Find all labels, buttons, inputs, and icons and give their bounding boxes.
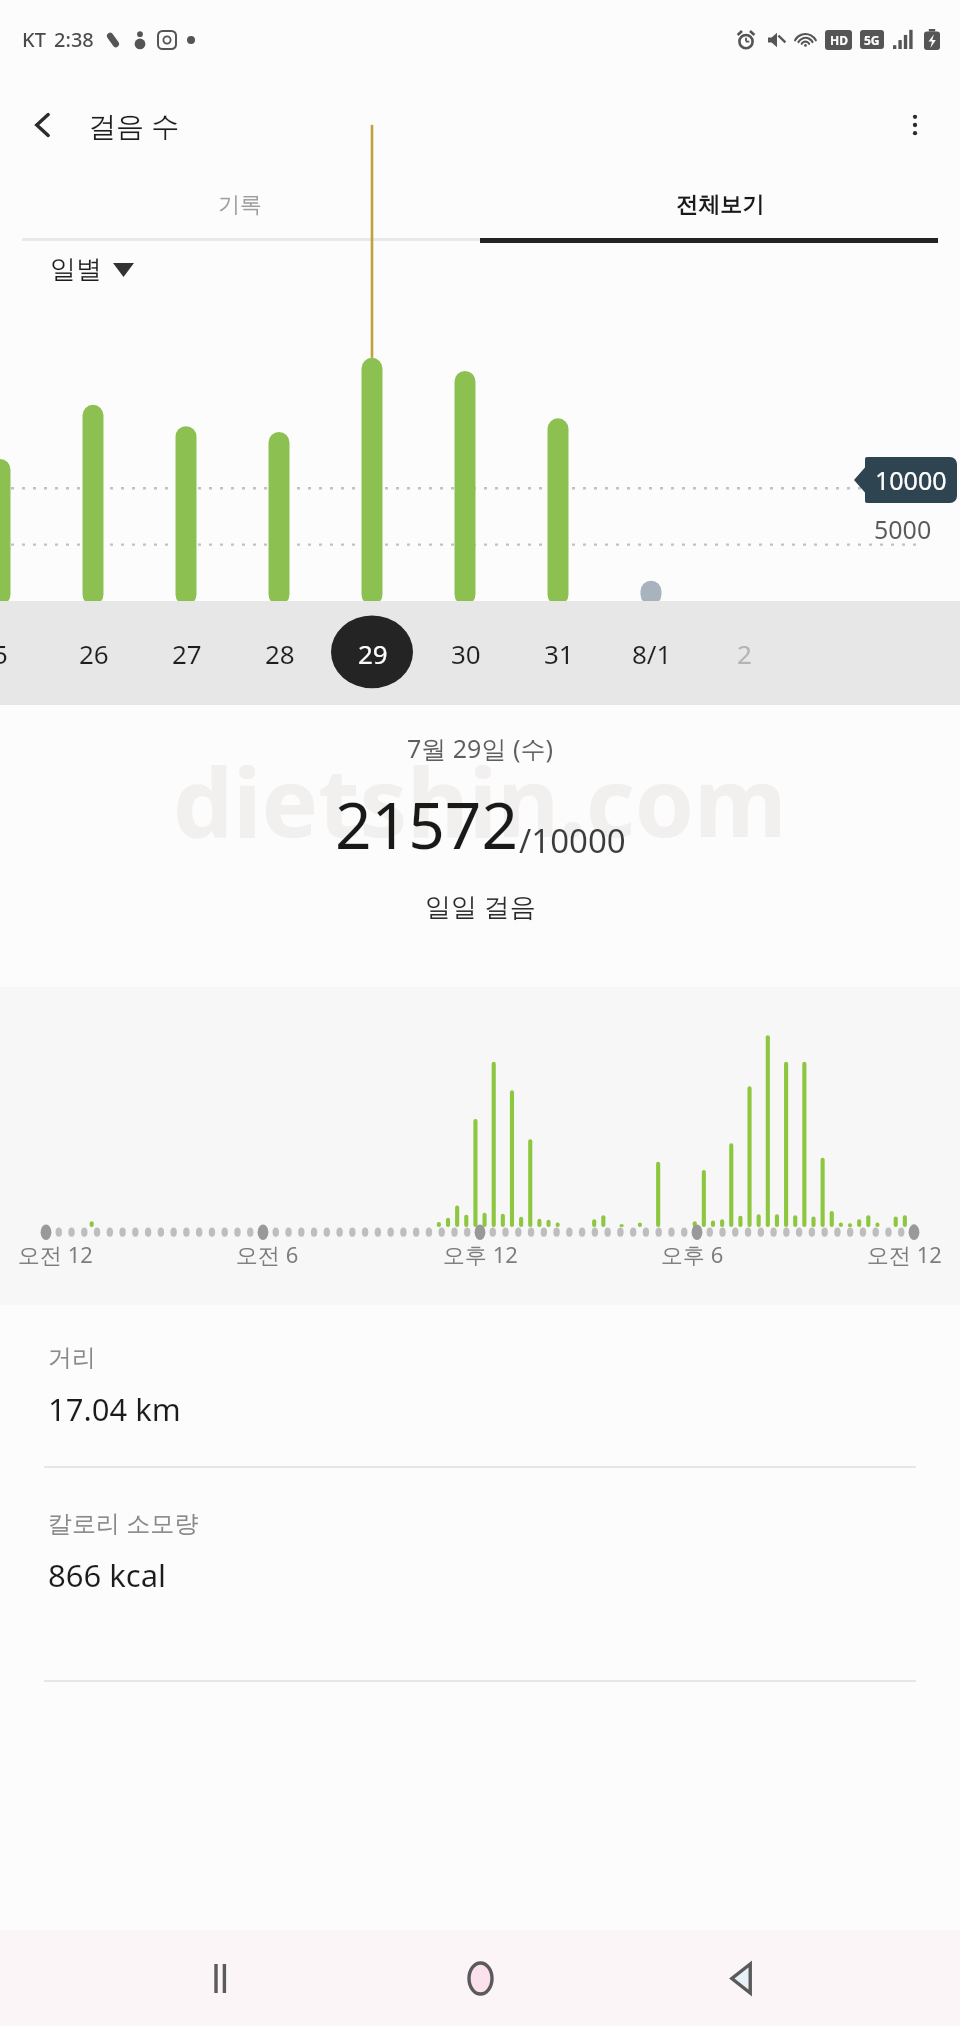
staticText: 8/1 xyxy=(632,636,672,671)
staticText: 오후 12 xyxy=(443,1239,518,1269)
button[interactable]: Recents xyxy=(179,1937,261,2019)
staticText: 전체보기 xyxy=(676,191,764,219)
staticText: 2:38 xyxy=(54,26,94,53)
staticText: /10000 xyxy=(519,818,626,863)
staticText: 오전 12 xyxy=(18,1239,93,1269)
button[interactable]: 31 xyxy=(512,601,605,705)
button[interactable]: 28 xyxy=(233,601,326,705)
staticText: 오전 6 xyxy=(236,1239,299,1269)
staticText: 7월 29일 (수) xyxy=(407,731,553,765)
button[interactable]: 27 xyxy=(140,601,233,705)
staticText: HD xyxy=(830,32,848,48)
staticText: 걸음 수 xyxy=(88,106,180,144)
staticText: 21572 xyxy=(335,781,519,868)
staticText: 866 kcal xyxy=(48,1554,167,1596)
staticText: 10000 xyxy=(875,463,947,497)
staticText: 29 xyxy=(358,636,388,671)
button[interactable]: Back xyxy=(700,1937,782,2019)
button[interactable]: 2 xyxy=(698,601,791,705)
staticText: 17.04 km xyxy=(48,1388,181,1430)
button[interactable]: 26 xyxy=(47,601,140,705)
button[interactable]: 일별 xyxy=(50,253,134,286)
staticText: 5 xyxy=(0,636,8,671)
staticText: 26 xyxy=(79,636,109,671)
staticText: 5G xyxy=(864,32,880,48)
staticText: 31 xyxy=(544,636,574,671)
button[interactable]: 거리 xyxy=(0,1305,960,1466)
staticText: KT xyxy=(22,26,46,53)
staticText: 거리 xyxy=(48,1343,96,1373)
staticText: 27 xyxy=(172,636,202,671)
button[interactable]: Back xyxy=(14,96,72,154)
staticText: 오전 12 xyxy=(867,1239,942,1269)
staticText: 일일 걸음 xyxy=(425,888,536,924)
staticText: 오후 6 xyxy=(661,1239,724,1269)
button[interactable]: 30 xyxy=(419,601,512,705)
staticText: 28 xyxy=(265,636,295,671)
staticText: 기록 xyxy=(218,191,262,219)
button[interactable]: 5 xyxy=(0,601,47,705)
button[interactable]: 기록 xyxy=(0,172,480,238)
staticText: 5000 xyxy=(874,512,932,546)
button[interactable]: 8/1 xyxy=(605,601,698,705)
button[interactable]: Home xyxy=(439,1937,521,2019)
button[interactable]: 칼로리 소모량 xyxy=(0,1468,960,1632)
staticText: dietshin.com xyxy=(173,735,787,864)
button[interactable]: 전체보기 xyxy=(480,172,960,238)
staticText: 칼로리 소모량 xyxy=(48,1506,199,1539)
button[interactable]: 29 xyxy=(326,601,419,705)
staticText: 30 xyxy=(451,636,481,671)
staticText: 일별 xyxy=(50,253,102,286)
staticText: 2 xyxy=(737,636,752,671)
button[interactable]: More options xyxy=(886,96,944,154)
